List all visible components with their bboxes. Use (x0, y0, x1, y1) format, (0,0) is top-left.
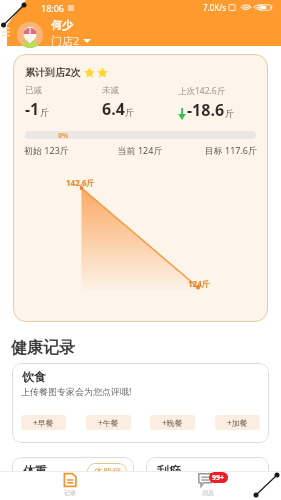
staticText: 饮食 (22, 369, 46, 384)
staticText: 7.0K/s (203, 2, 227, 13)
staticText: 当前 124斤 (101, 144, 179, 156)
staticText: -1 (25, 98, 40, 120)
button[interactable]: 刮痧 (146, 457, 269, 500)
staticText: 累计到店2次 (25, 65, 81, 79)
staticText: 6.4 (102, 98, 125, 120)
staticText: 18:06 (41, 2, 65, 14)
staticText: +加餐 (227, 417, 248, 428)
button[interactable]: +早餐 (21, 415, 66, 430)
staticText: 目标 117.6斤 (179, 144, 257, 156)
staticText: 刮痧 (157, 463, 181, 478)
button[interactable]: +晚餐 (150, 415, 195, 430)
staticText: 99+ (212, 473, 225, 483)
staticText: 何少 (51, 18, 73, 32)
staticText: 斤 (40, 107, 49, 118)
other: Menu (2, 27, 10, 38)
button[interactable]: Records (55, 473, 85, 497)
staticText: 体重 (23, 463, 47, 478)
staticText: +晚餐 (162, 417, 183, 428)
staticText: 消息 (202, 489, 214, 497)
button[interactable]: Profile (17, 22, 43, 48)
staticText: 斤 (225, 108, 234, 119)
staticText: 斤 (125, 107, 134, 118)
staticText: 0% (58, 131, 69, 141)
button[interactable]: +加餐 (215, 415, 260, 430)
button[interactable]: +午餐 (86, 415, 131, 430)
staticText: 142.6斤 (66, 177, 95, 188)
staticText: +午餐 (98, 417, 119, 428)
staticText: 初始 123斤 (24, 144, 101, 156)
staticText: +早餐 (33, 417, 54, 428)
staticText: 门店2 (51, 33, 80, 48)
staticText: 已减 (25, 85, 42, 96)
staticText: 上传餐图专家会为您点评哦! (21, 385, 132, 397)
staticText: -18.6 (187, 99, 225, 121)
staticText: 健康记录 (11, 338, 75, 358)
staticText: 未减 (102, 85, 119, 96)
staticText: 124斤 (188, 278, 210, 289)
button[interactable]: 体脂秤 (87, 463, 127, 479)
button[interactable]: 体重 (12, 457, 134, 500)
staticText: 记录 (64, 489, 76, 497)
staticText: 上次142.6斤 (178, 85, 226, 97)
staticText: 体脂秤 (94, 466, 121, 477)
button[interactable]: Messages (192, 473, 224, 497)
button[interactable]: 饮食 (12, 363, 269, 443)
